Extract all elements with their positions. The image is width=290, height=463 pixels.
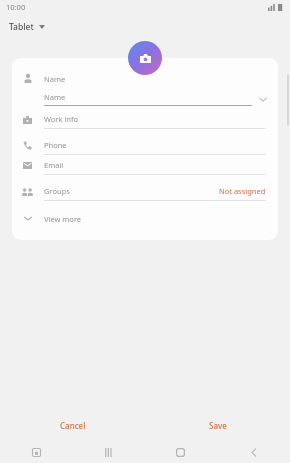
staticText: Not assigned: [219, 186, 266, 196]
button[interactable]: Save: [145, 408, 290, 442]
button[interactable]: Screenshot: [0, 442, 72, 463]
button[interactable]: Cancel: [0, 408, 145, 442]
button[interactable]: Home: [144, 442, 217, 463]
other: Expand name: [258, 94, 268, 104]
staticText: Groups: [44, 186, 70, 196]
button[interactable]: Email: [12, 158, 278, 175]
button[interactable]: Work info: [12, 110, 278, 129]
button[interactable]: View more: [12, 207, 278, 230]
staticText: Cancel: [60, 420, 86, 431]
staticText: View more: [44, 214, 82, 224]
button[interactable]: Name: [12, 92, 278, 106]
button[interactable]: Back: [217, 442, 290, 463]
staticText: Work info: [44, 114, 79, 124]
staticText: Name: [44, 92, 66, 102]
staticText: Tablet: [9, 21, 34, 33]
staticText: Email: [44, 160, 64, 170]
button[interactable]: Change photo: [128, 41, 162, 75]
button[interactable]: Phone: [12, 138, 278, 155]
staticText: 10:00: [6, 2, 26, 12]
staticText: Save: [209, 420, 227, 431]
staticText: Name: [44, 74, 66, 84]
staticText: Phone: [44, 140, 67, 150]
button[interactable]: Recents: [72, 442, 144, 463]
button[interactable]: Tablet: [7, 18, 47, 36]
button[interactable]: Groups: [12, 186, 278, 201]
